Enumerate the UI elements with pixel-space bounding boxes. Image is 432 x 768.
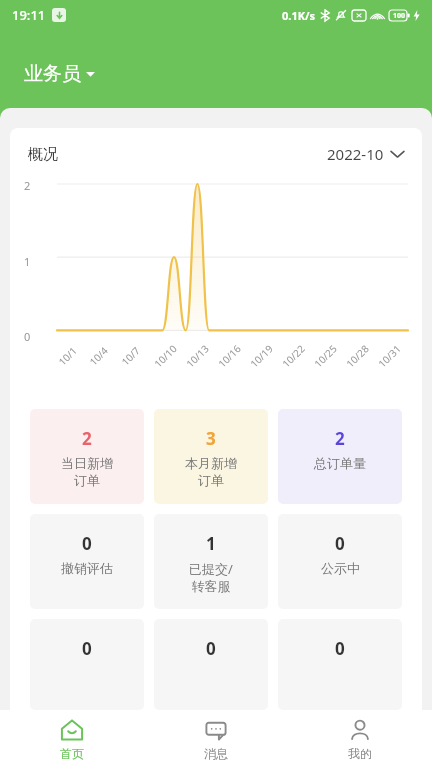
button[interactable]: 消息: [144, 710, 288, 768]
other: 消息: [204, 718, 228, 742]
staticText: 撤销评估: [61, 560, 113, 576]
staticText: 消息: [204, 746, 228, 761]
staticText: 10/7: [118, 344, 143, 368]
button[interactable]: 0: [154, 619, 268, 710]
staticText: 0: [335, 637, 345, 660]
staticText: 0: [82, 637, 92, 660]
staticText: 1: [24, 254, 31, 269]
staticText: 已提交/ 转客服: [189, 560, 233, 595]
staticText: 首页: [60, 746, 84, 761]
staticText: 我的: [348, 746, 372, 761]
button[interactable]: 0: [278, 514, 402, 609]
button[interactable]: 0: [278, 619, 402, 710]
staticText: 10/28: [343, 341, 372, 370]
staticText: 19:11: [12, 6, 46, 24]
button[interactable]: 1: [154, 514, 268, 609]
staticText: 概况: [28, 145, 58, 164]
staticText: 10/31: [375, 341, 404, 370]
staticText: 10/22: [279, 341, 308, 370]
other: 首页: [60, 718, 84, 742]
staticText: 本月新增 订单: [185, 455, 237, 489]
staticText: 10/13: [183, 341, 212, 370]
staticText: 2: [82, 427, 92, 450]
button[interactable]: 0: [30, 619, 144, 710]
staticText: 2: [24, 178, 31, 193]
button[interactable]: 我的: [288, 710, 432, 768]
button[interactable]: 3: [154, 409, 268, 504]
button[interactable]: 2022-10: [327, 144, 404, 164]
staticText: 3: [206, 427, 216, 450]
staticText: 10/4: [86, 344, 111, 368]
staticText: 2: [335, 427, 345, 450]
staticText: 10/16: [215, 341, 244, 370]
staticText: 0: [206, 637, 216, 660]
staticText: 10/19: [247, 341, 276, 370]
staticText: 业务员: [24, 62, 81, 86]
staticText: 当日新增 订单: [61, 455, 113, 489]
staticText: 10/25: [311, 341, 340, 370]
staticText: 2022-10: [327, 144, 384, 164]
staticText: 10/10: [151, 341, 180, 370]
staticText: 0: [82, 532, 92, 555]
button[interactable]: 首页: [0, 710, 144, 768]
staticText: 0.1K/s: [282, 8, 316, 23]
staticText: 10/1: [55, 344, 80, 368]
staticText: 0: [335, 532, 345, 555]
staticText: 100: [393, 11, 406, 21]
staticText: 1: [206, 532, 216, 555]
staticText: 公示中: [321, 560, 360, 576]
button[interactable]: 业务员: [24, 62, 95, 86]
other: 我的: [348, 718, 372, 742]
staticText: 0: [24, 329, 31, 344]
button[interactable]: 2: [30, 409, 144, 504]
button[interactable]: 2: [278, 409, 402, 504]
button[interactable]: 0: [30, 514, 144, 609]
staticText: 总订单量: [314, 455, 366, 471]
